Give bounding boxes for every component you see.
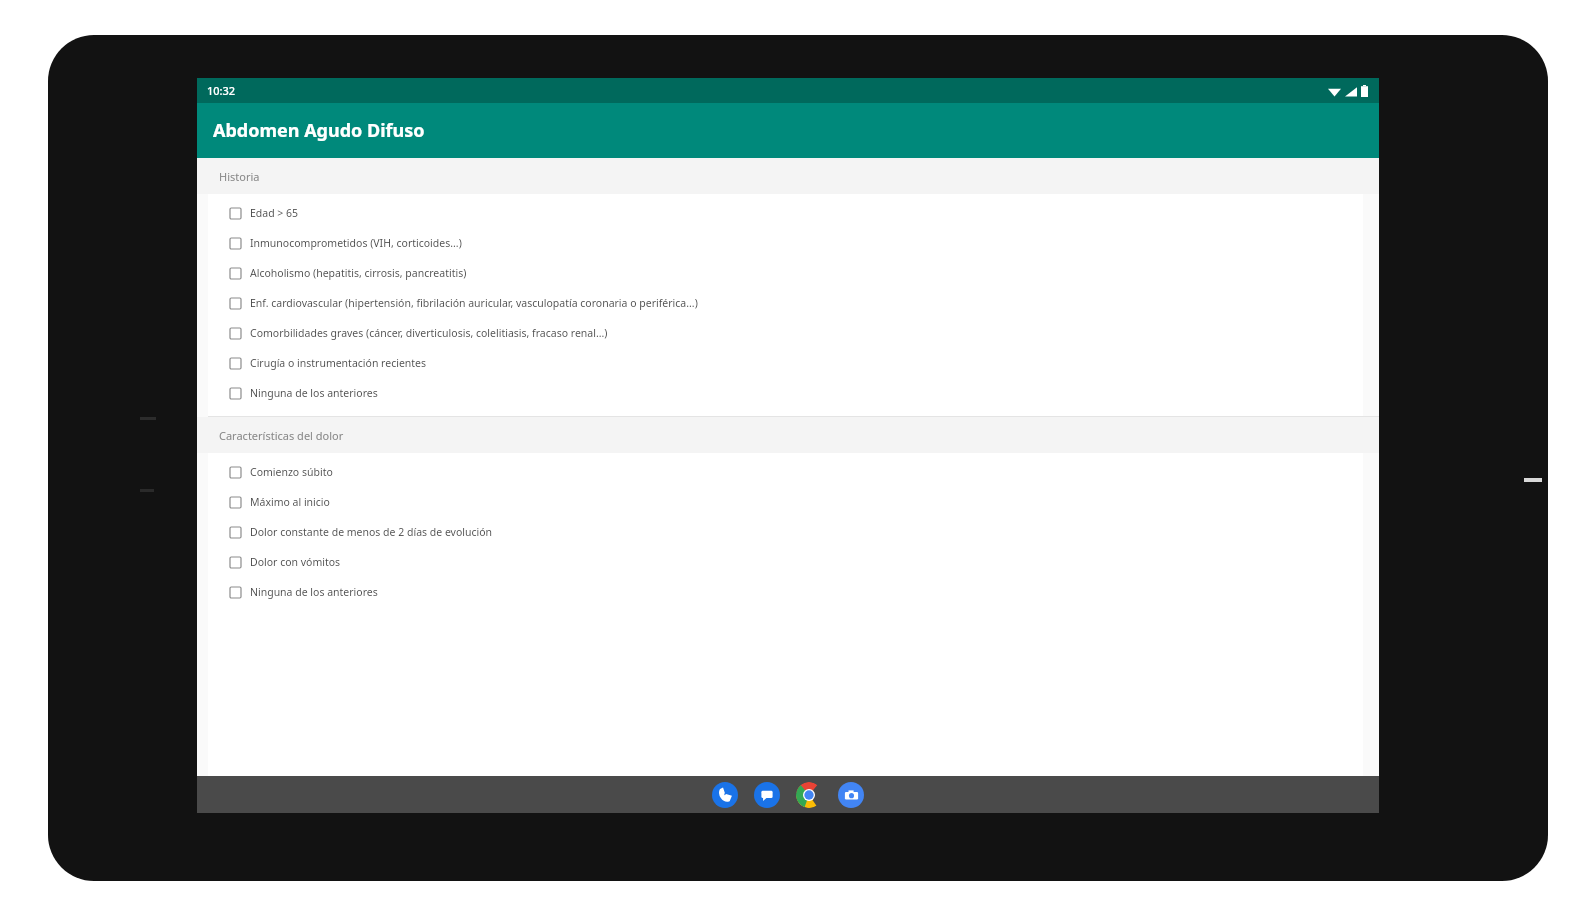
button[interactable]: Phone: [712, 782, 738, 808]
button[interactable]: Comorbilidades graves (cáncer, diverticu…: [208, 318, 1363, 348]
staticText: Inmunocomprometidos (VIH, corticoides...…: [250, 236, 462, 250]
button[interactable]: Comienzo súbito: [208, 457, 1363, 487]
staticText: Ninguna de los anteriores: [250, 585, 378, 599]
button[interactable]: Ninguna de los anteriores: [208, 577, 1363, 607]
staticText: Edad > 65: [250, 206, 299, 220]
staticText: Historia: [219, 169, 260, 184]
staticText: Comorbilidades graves (cáncer, diverticu…: [250, 326, 608, 340]
staticText: Dolor con vómitos: [250, 555, 341, 569]
button[interactable]: Dolor constante de menos de 2 días de ev…: [208, 517, 1363, 547]
staticText: Alcoholismo (hepatitis, cirrosis, pancre…: [250, 266, 467, 280]
staticText: Dolor constante de menos de 2 días de ev…: [250, 525, 493, 539]
staticText: Máximo al inicio: [250, 495, 330, 509]
staticText: Cirugía o instrumentación recientes: [250, 356, 427, 370]
button[interactable]: Dolor con vómitos: [208, 547, 1363, 577]
button[interactable]: Alcoholismo (hepatitis, cirrosis, pancre…: [208, 258, 1363, 288]
button[interactable]: Máximo al inicio: [208, 487, 1363, 517]
button[interactable]: Edad > 65: [208, 198, 1363, 228]
button[interactable]: Messages: [754, 782, 780, 808]
staticText: Abdomen Agudo Difuso: [213, 118, 425, 143]
staticText: 10:32: [207, 83, 236, 98]
button[interactable]: Enf. cardiovascular (hipertensión, fibri…: [208, 288, 1363, 318]
button[interactable]: Cirugía o instrumentación recientes: [208, 348, 1363, 378]
staticText: Características del dolor: [219, 428, 344, 443]
staticText: Enf. cardiovascular (hipertensión, fibri…: [250, 296, 698, 310]
staticText: Comienzo súbito: [250, 465, 333, 479]
button[interactable]: Ninguna de los anteriores: [208, 378, 1363, 408]
button[interactable]: Camera: [838, 782, 864, 808]
staticText: Ninguna de los anteriores: [250, 386, 378, 400]
button[interactable]: Chrome: [796, 782, 822, 808]
button[interactable]: Inmunocomprometidos (VIH, corticoides...…: [208, 228, 1363, 258]
